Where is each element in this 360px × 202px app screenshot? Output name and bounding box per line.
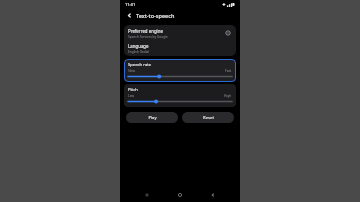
staticText: Pitch xyxy=(128,87,138,93)
button[interactable] xyxy=(128,74,232,79)
button[interactable]: Back xyxy=(125,11,134,20)
button[interactable]: Speech rate xyxy=(124,59,236,82)
button[interactable]: Pitch xyxy=(124,84,236,107)
staticText: English (India) xyxy=(128,50,150,54)
staticText: Fast xyxy=(225,69,232,73)
button[interactable]: Back xyxy=(207,189,219,201)
staticText: Language xyxy=(128,43,149,49)
staticText: Speech rate xyxy=(128,62,152,68)
staticText: Reset xyxy=(203,115,214,121)
button[interactable]: Engine settings xyxy=(224,29,232,37)
button[interactable]: Language xyxy=(124,41,236,56)
button[interactable]: Preferred engine xyxy=(124,25,236,41)
staticText: Preferred engine xyxy=(128,28,163,34)
staticText: Low xyxy=(128,94,135,98)
button[interactable] xyxy=(128,99,232,104)
button[interactable]: Home xyxy=(174,189,186,201)
button[interactable]: Reset xyxy=(182,112,234,123)
button[interactable]: Play xyxy=(126,112,178,123)
staticText: High xyxy=(224,94,232,98)
staticText: Text-to-speech xyxy=(136,12,175,19)
staticText: Slow xyxy=(128,69,135,73)
staticText: Speech Services by Google xyxy=(128,35,168,39)
button[interactable]: Recents xyxy=(141,189,153,201)
staticText: Play xyxy=(148,115,157,121)
staticText: 11:01 xyxy=(125,2,136,7)
